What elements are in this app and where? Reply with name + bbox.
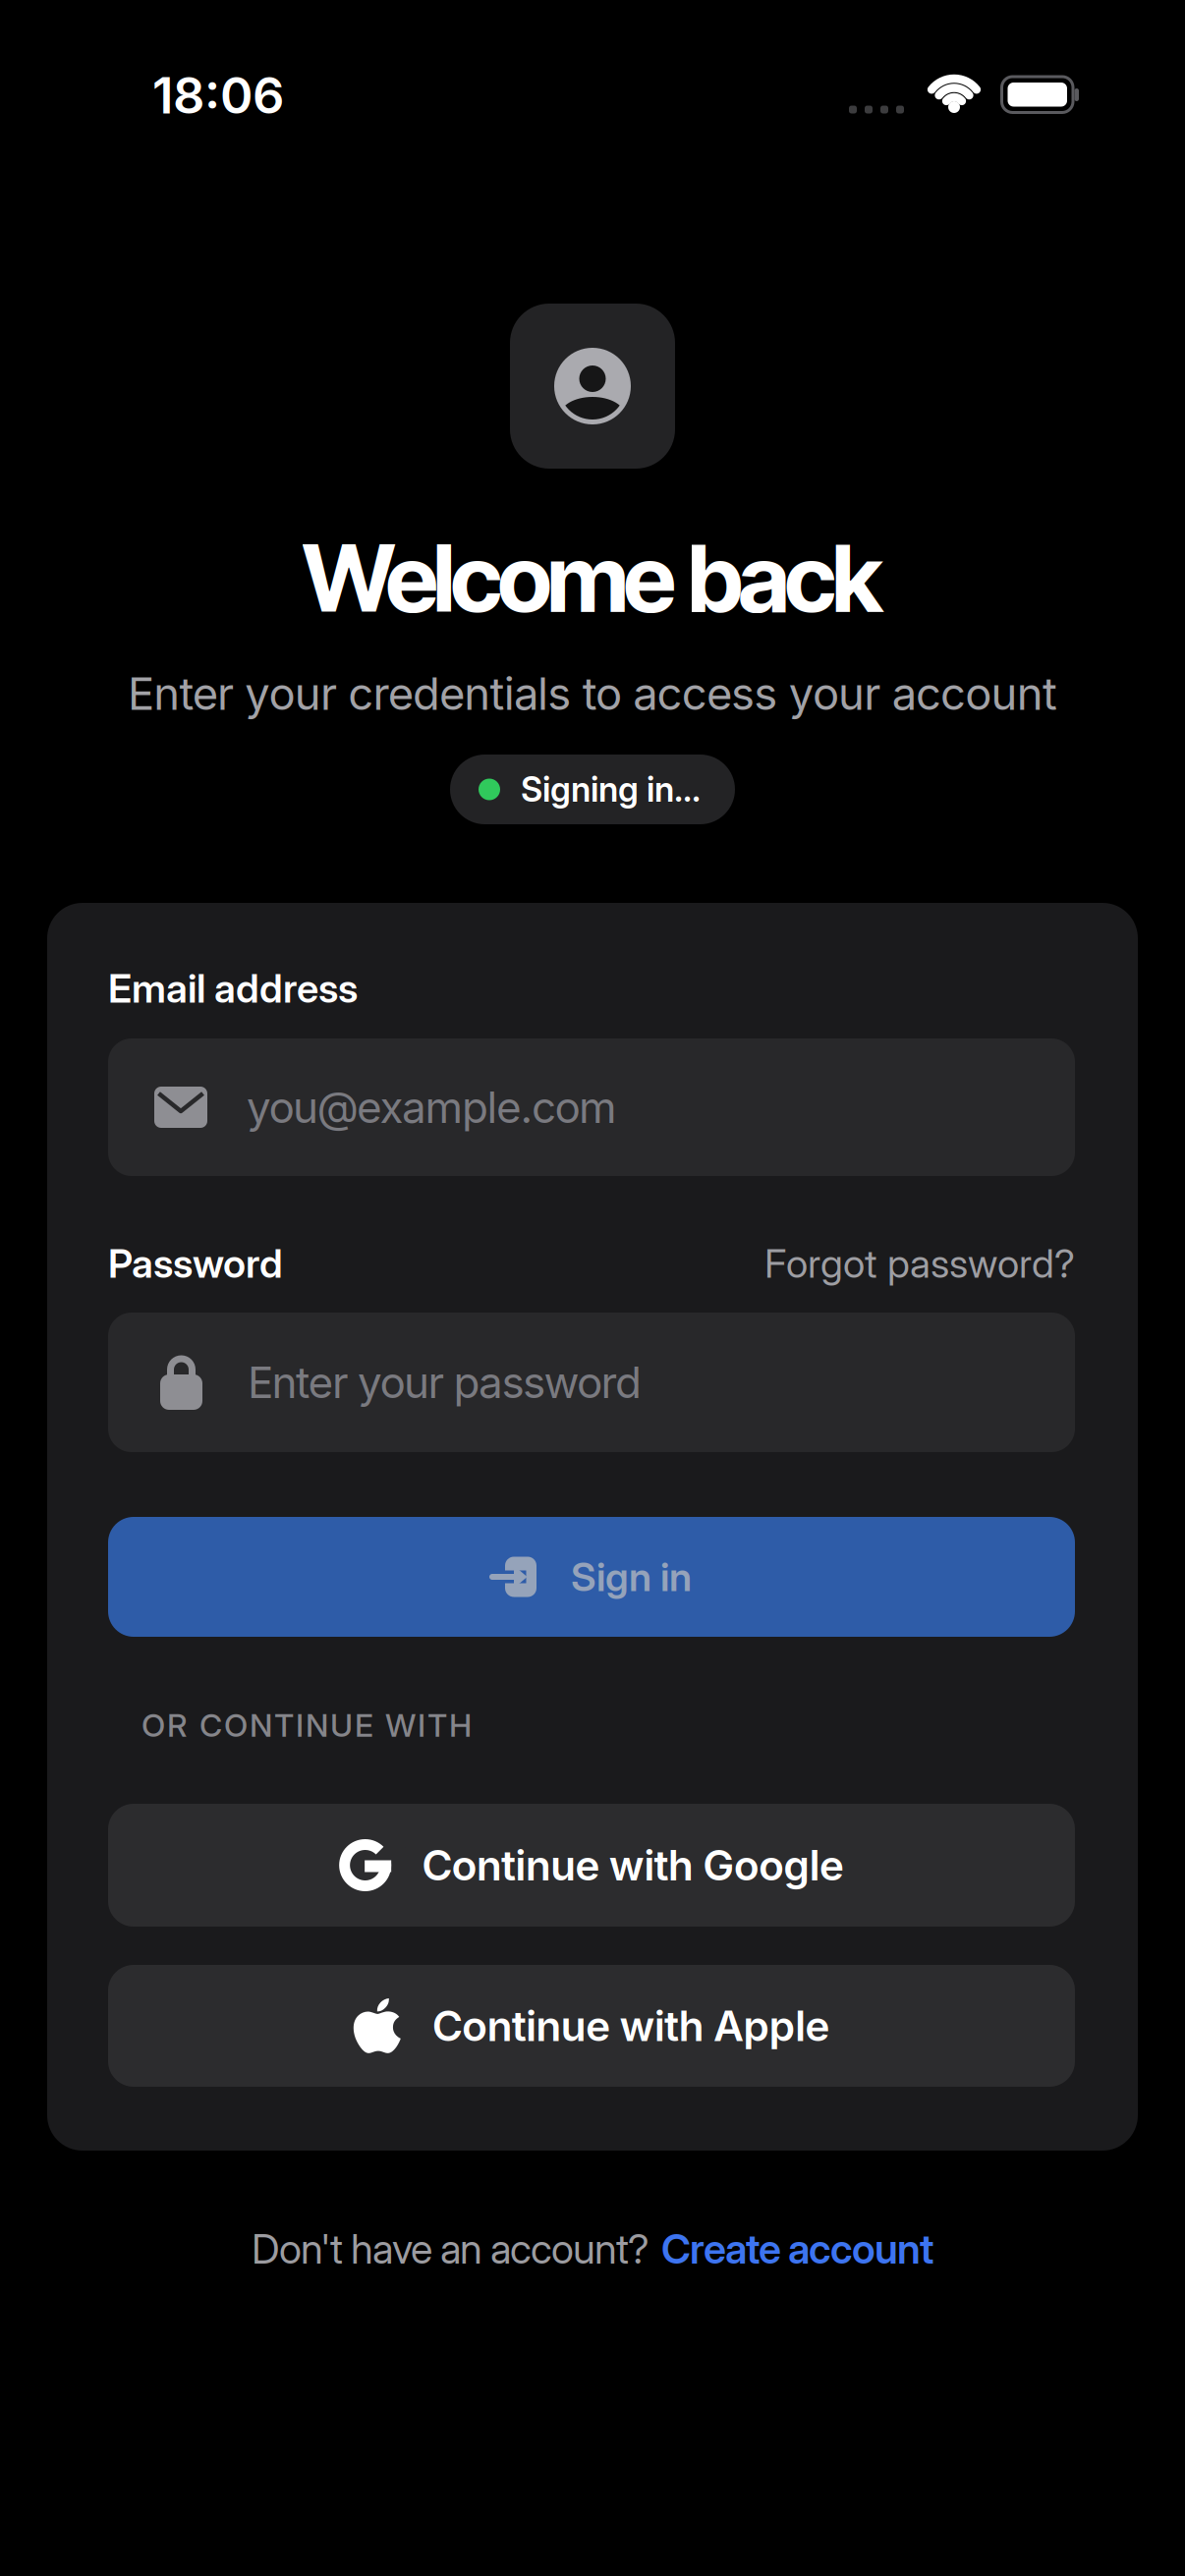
staticText: Sign in xyxy=(571,1553,692,1601)
staticText: Continue with Apple xyxy=(432,2000,830,2051)
staticText: Password xyxy=(108,1240,283,1287)
staticText: Email address xyxy=(108,965,358,1012)
button[interactable]: Continue with Google xyxy=(108,1804,1075,1927)
button[interactable]: Sign in xyxy=(108,1517,1075,1637)
button[interactable]: Continue with Apple xyxy=(108,1965,1075,2087)
staticText: Welcome xyxy=(302,521,676,634)
button[interactable]: Create account xyxy=(661,2224,933,2273)
button[interactable]: Forgot password? xyxy=(764,1240,1075,1287)
staticText: Continue with Google xyxy=(422,1840,844,1891)
staticText: Enter your credentials to access your ac… xyxy=(128,667,1057,721)
staticText: 18:06 xyxy=(152,65,284,125)
staticText: Don't have an account? xyxy=(252,2224,649,2273)
button[interactable]: Password xyxy=(108,1313,1075,1452)
staticText: Signing in... xyxy=(521,769,701,810)
button[interactable]: Email address xyxy=(108,1038,1075,1176)
staticText: Forgot password? xyxy=(764,1240,1075,1287)
staticText: Create account xyxy=(661,2224,933,2273)
staticText: back xyxy=(687,521,883,634)
staticText: OR CONTINUE WITH xyxy=(141,1706,472,1744)
staticText: you@example.com xyxy=(247,1081,617,1133)
staticText: Enter your password xyxy=(248,1356,642,1408)
